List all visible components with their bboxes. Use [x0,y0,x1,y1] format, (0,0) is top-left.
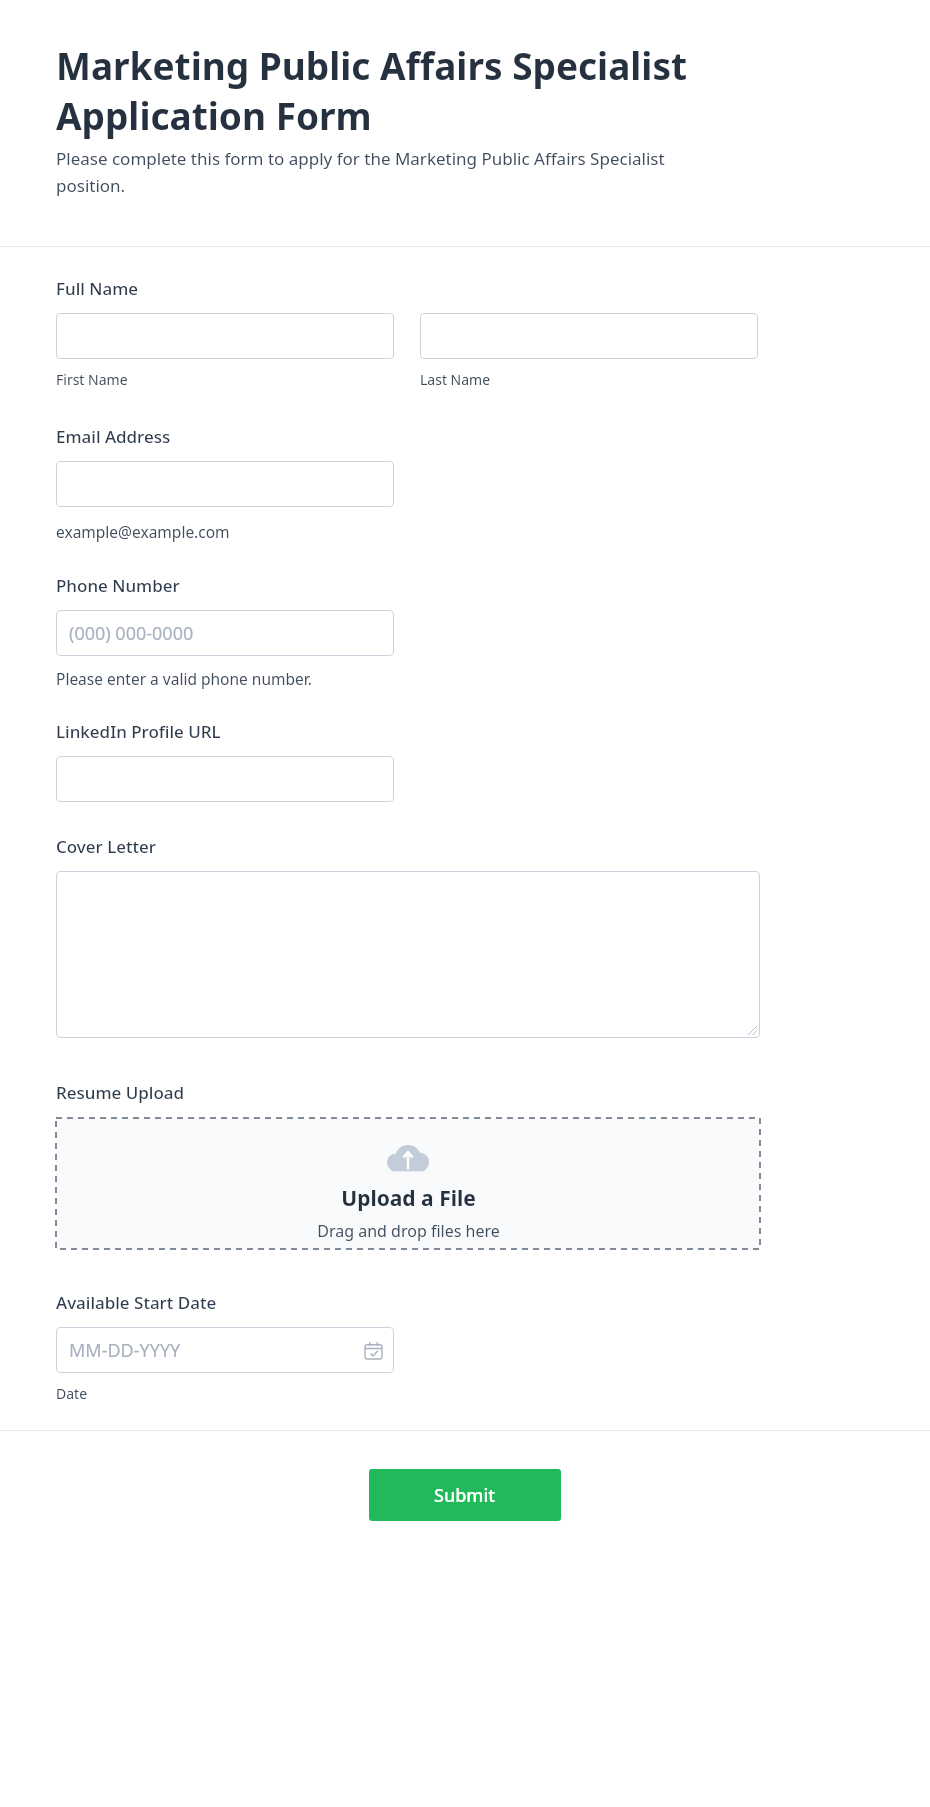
staticText: Upload a File [341,1184,476,1213]
staticText: Last Name [420,370,491,389]
button[interactable]: Available Start Date [56,1327,394,1373]
staticText: Marketing Public Affairs Specialist [56,40,688,90]
staticText: Phone Number [56,574,180,597]
staticText: MM-DD-YYYY [69,1338,181,1363]
button[interactable]: Last Name [420,313,758,359]
staticText: Available Start Date [56,1291,217,1314]
staticText: Resume Upload [56,1081,185,1104]
staticText: LinkedIn Profile URL [56,720,221,743]
button[interactable]: Upload a File [56,1118,760,1249]
staticText: Email Address [56,425,171,448]
staticText: Please enter a valid phone number. [56,668,312,689]
button[interactable]: First Name [56,313,394,359]
staticText: Drag and drop files here [317,1220,500,1242]
staticText: Date [56,1384,88,1403]
staticText: Cover Letter [56,835,156,858]
staticText: First Name [56,370,128,389]
staticText: example@example.com [56,521,230,542]
button[interactable]: Email Address [56,461,394,507]
staticText: (000) 000-0000 [69,621,194,646]
staticText: Full Name [56,277,139,300]
staticText: Application Form [56,90,372,140]
button[interactable]: Submit [369,1469,561,1521]
button[interactable]: LinkedIn Profile URL [56,756,394,802]
staticText: Please complete this form to apply for t… [56,147,696,197]
button[interactable]: Cover Letter [56,871,760,1038]
button[interactable]: Phone Number [56,610,394,656]
staticText: Submit [434,1483,496,1508]
